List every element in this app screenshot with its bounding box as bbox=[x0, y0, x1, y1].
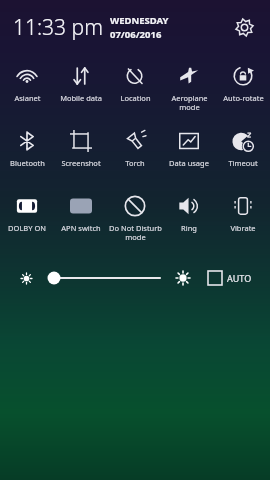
staticText: 11:33 pm bbox=[13, 13, 103, 42]
button[interactable]: Asianet bbox=[0, 58, 54, 123]
staticText: AUTO bbox=[227, 272, 252, 284]
button[interactable]: High brightness bbox=[172, 267, 194, 289]
button[interactable]: Screenshot bbox=[54, 123, 108, 188]
staticText: Screenshot bbox=[61, 158, 101, 168]
staticText: DOLBY ON bbox=[8, 223, 46, 233]
button[interactable]: Location bbox=[108, 58, 162, 123]
button[interactable]: Torch bbox=[108, 123, 162, 188]
button[interactable]: Aeroplane mode bbox=[162, 58, 216, 123]
staticText: Auto-rotate bbox=[223, 93, 264, 103]
staticText: Vibrate bbox=[230, 223, 256, 233]
staticText: Location bbox=[120, 93, 151, 103]
staticText: Timeout bbox=[228, 158, 258, 168]
staticText: APN switch bbox=[61, 223, 101, 233]
staticText: WEDNESDAY bbox=[110, 14, 169, 27]
button[interactable]: Timeout bbox=[216, 123, 270, 188]
staticText: Data usage bbox=[169, 158, 209, 168]
staticText: Aeroplane mode bbox=[171, 93, 208, 112]
staticText: Do Not Disturb mode bbox=[109, 223, 162, 242]
button[interactable]: Bluetooth bbox=[0, 123, 54, 188]
staticText: 07/06/2016 bbox=[110, 28, 162, 41]
staticText: Mobile data bbox=[60, 93, 102, 103]
button[interactable]: APN switch bbox=[54, 188, 108, 253]
staticText: Torch bbox=[125, 158, 145, 168]
button[interactable]: Data usage bbox=[162, 123, 216, 188]
button[interactable]: Ring bbox=[162, 188, 216, 253]
button[interactable]: Do Not Disturb mode bbox=[108, 188, 162, 253]
staticText: Ring bbox=[181, 223, 197, 233]
button[interactable]: Low brightness bbox=[16, 268, 36, 288]
staticText: Asianet bbox=[14, 93, 41, 103]
button[interactable]: Brightness slider bbox=[44, 267, 164, 289]
button[interactable]: Settings bbox=[226, 9, 262, 45]
button[interactable]: Auto-rotate bbox=[216, 58, 270, 123]
button[interactable]: DOLBY ON bbox=[0, 188, 54, 253]
staticText: Bluetooth bbox=[10, 158, 45, 168]
button[interactable]: AUTO bbox=[206, 269, 254, 287]
button[interactable]: Mobile data bbox=[54, 58, 108, 123]
button[interactable]: Vibrate bbox=[216, 188, 270, 253]
